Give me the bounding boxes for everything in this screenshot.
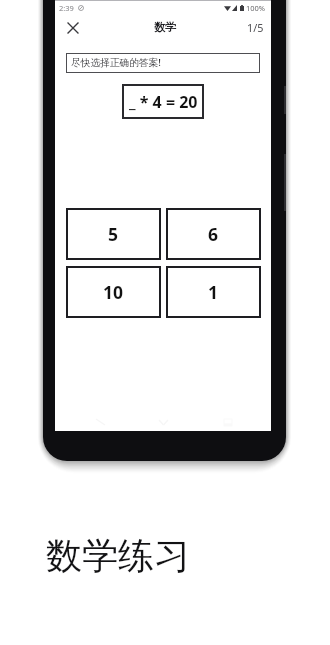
button[interactable]: 尽快选择正确的答案! — [66, 53, 260, 73]
staticText: 尽快选择正确的答案! — [71, 56, 161, 69]
staticText: 1 — [208, 280, 219, 304]
staticText: 10 — [103, 280, 124, 304]
button[interactable]: 1 — [166, 266, 261, 318]
button[interactable]: Close — [64, 18, 82, 36]
button[interactable]: 6 — [166, 208, 261, 260]
button[interactable]: 5 — [66, 208, 161, 260]
staticText: 100% — [246, 3, 266, 13]
button[interactable]: 10 — [66, 266, 161, 318]
staticText: 数学练习 — [46, 533, 190, 578]
staticText: 2:39 — [59, 3, 74, 13]
staticText: 1/5 — [247, 20, 264, 35]
staticText: _ * 4 = 20 — [129, 91, 198, 113]
staticText: 6 — [208, 222, 219, 246]
staticText: 数学 — [154, 20, 176, 34]
staticText: 5 — [108, 222, 119, 246]
